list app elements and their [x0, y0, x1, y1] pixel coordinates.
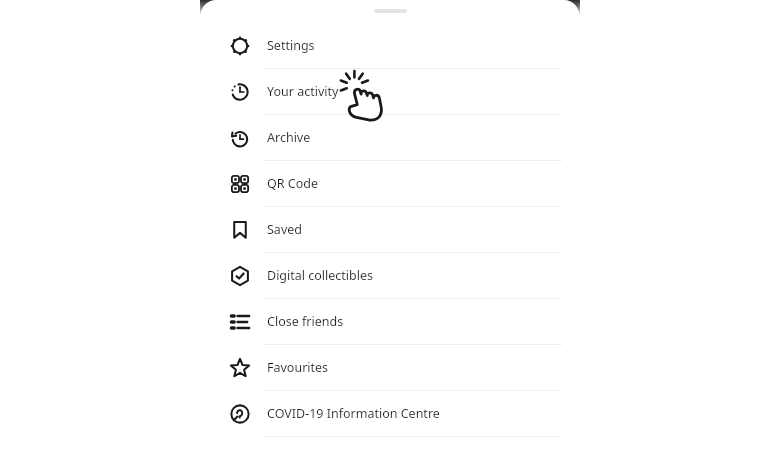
staticText: Digital collectibles — [267, 267, 374, 284]
staticText: Saved — [267, 221, 302, 238]
button[interactable]: COVID-19 Information Centre — [216, 391, 564, 437]
staticText: Archive — [267, 129, 311, 146]
button[interactable]: Favourites — [216, 345, 564, 391]
staticText: Favourites — [267, 359, 329, 376]
button[interactable]: Close friends — [216, 299, 564, 345]
staticText: Your activity — [267, 83, 339, 100]
button[interactable]: Saved — [216, 207, 564, 253]
button[interactable]: Archive — [216, 115, 564, 161]
button[interactable]: Your activity — [216, 69, 564, 115]
staticText: Settings — [267, 37, 315, 54]
button[interactable]: Settings — [216, 23, 564, 69]
button[interactable]: QR Code — [216, 161, 564, 207]
staticText: QR Code — [267, 175, 318, 192]
button[interactable]: Digital collectibles — [216, 253, 564, 299]
staticText: Close friends — [267, 313, 344, 330]
staticText: COVID-19 Information Centre — [267, 405, 440, 422]
